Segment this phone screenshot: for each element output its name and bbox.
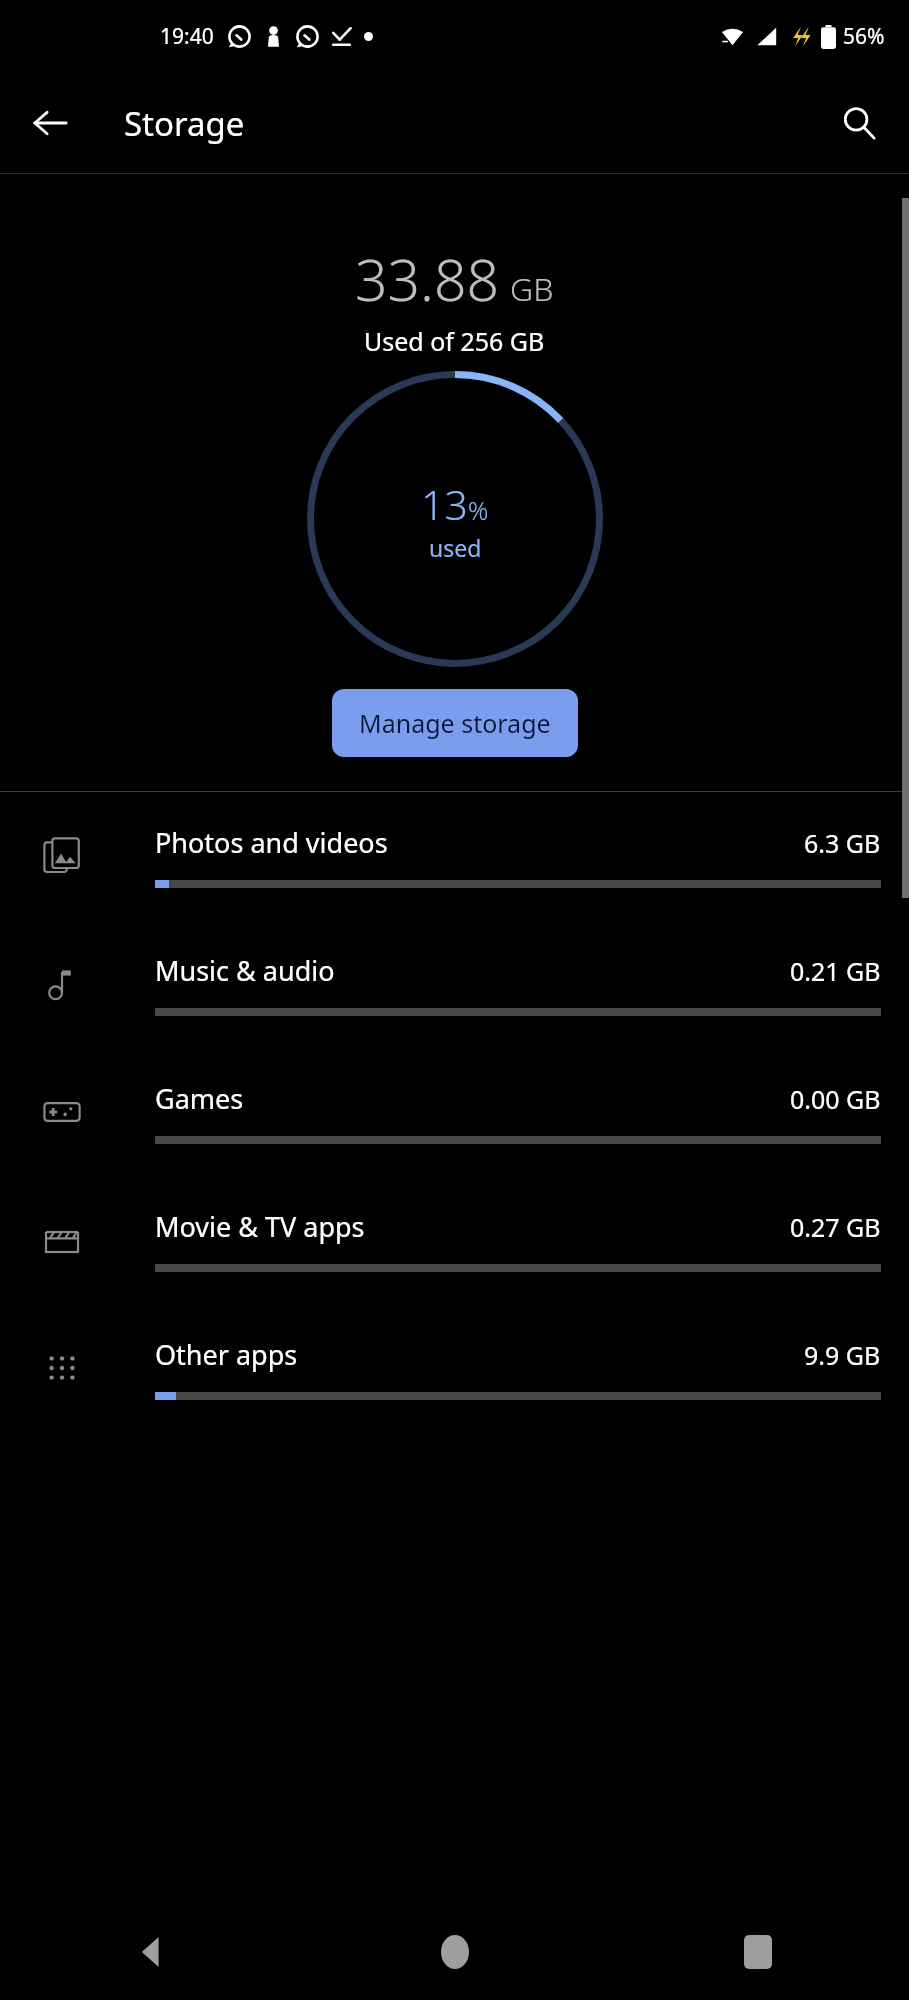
staticText: GB	[510, 267, 554, 311]
staticText: Storage	[124, 101, 245, 146]
staticText: Other apps	[155, 1336, 298, 1373]
staticText: 9.9 GB	[804, 1338, 881, 1372]
button[interactable]: Music & audio	[0, 920, 909, 1048]
staticText: 33.88	[355, 240, 500, 318]
button[interactable]: Home	[303, 1904, 606, 2000]
staticText: Photos and videos	[155, 824, 388, 861]
button[interactable]: Games	[0, 1048, 909, 1176]
staticText: Games	[155, 1080, 244, 1117]
staticText: Used of 256 GB	[364, 324, 545, 358]
button[interactable]: Search	[827, 91, 891, 155]
staticText: 6.3 GB	[804, 826, 881, 860]
button[interactable]: Other apps	[0, 1304, 909, 1432]
staticText: Movie & TV apps	[155, 1208, 365, 1245]
button[interactable]: Recent apps	[606, 1904, 909, 2000]
staticText: 0.27 GB	[790, 1210, 881, 1244]
button[interactable]: Movie & TV apps	[0, 1176, 909, 1304]
staticText: 13	[421, 476, 468, 532]
staticText: 19:40	[160, 22, 214, 51]
button[interactable]: Back	[18, 91, 82, 155]
staticText: Manage storage	[359, 706, 551, 740]
button[interactable]: Manage storage	[332, 689, 578, 757]
staticText: %	[468, 493, 489, 527]
staticText: used	[429, 532, 482, 563]
staticText: 0.00 GB	[790, 1082, 881, 1116]
staticText: Music & audio	[155, 952, 335, 989]
button[interactable]: Photos and videos	[0, 792, 909, 920]
button[interactable]: Back	[0, 1904, 303, 2000]
staticText: 56%	[843, 22, 885, 51]
staticText: 0.21 GB	[790, 954, 881, 988]
